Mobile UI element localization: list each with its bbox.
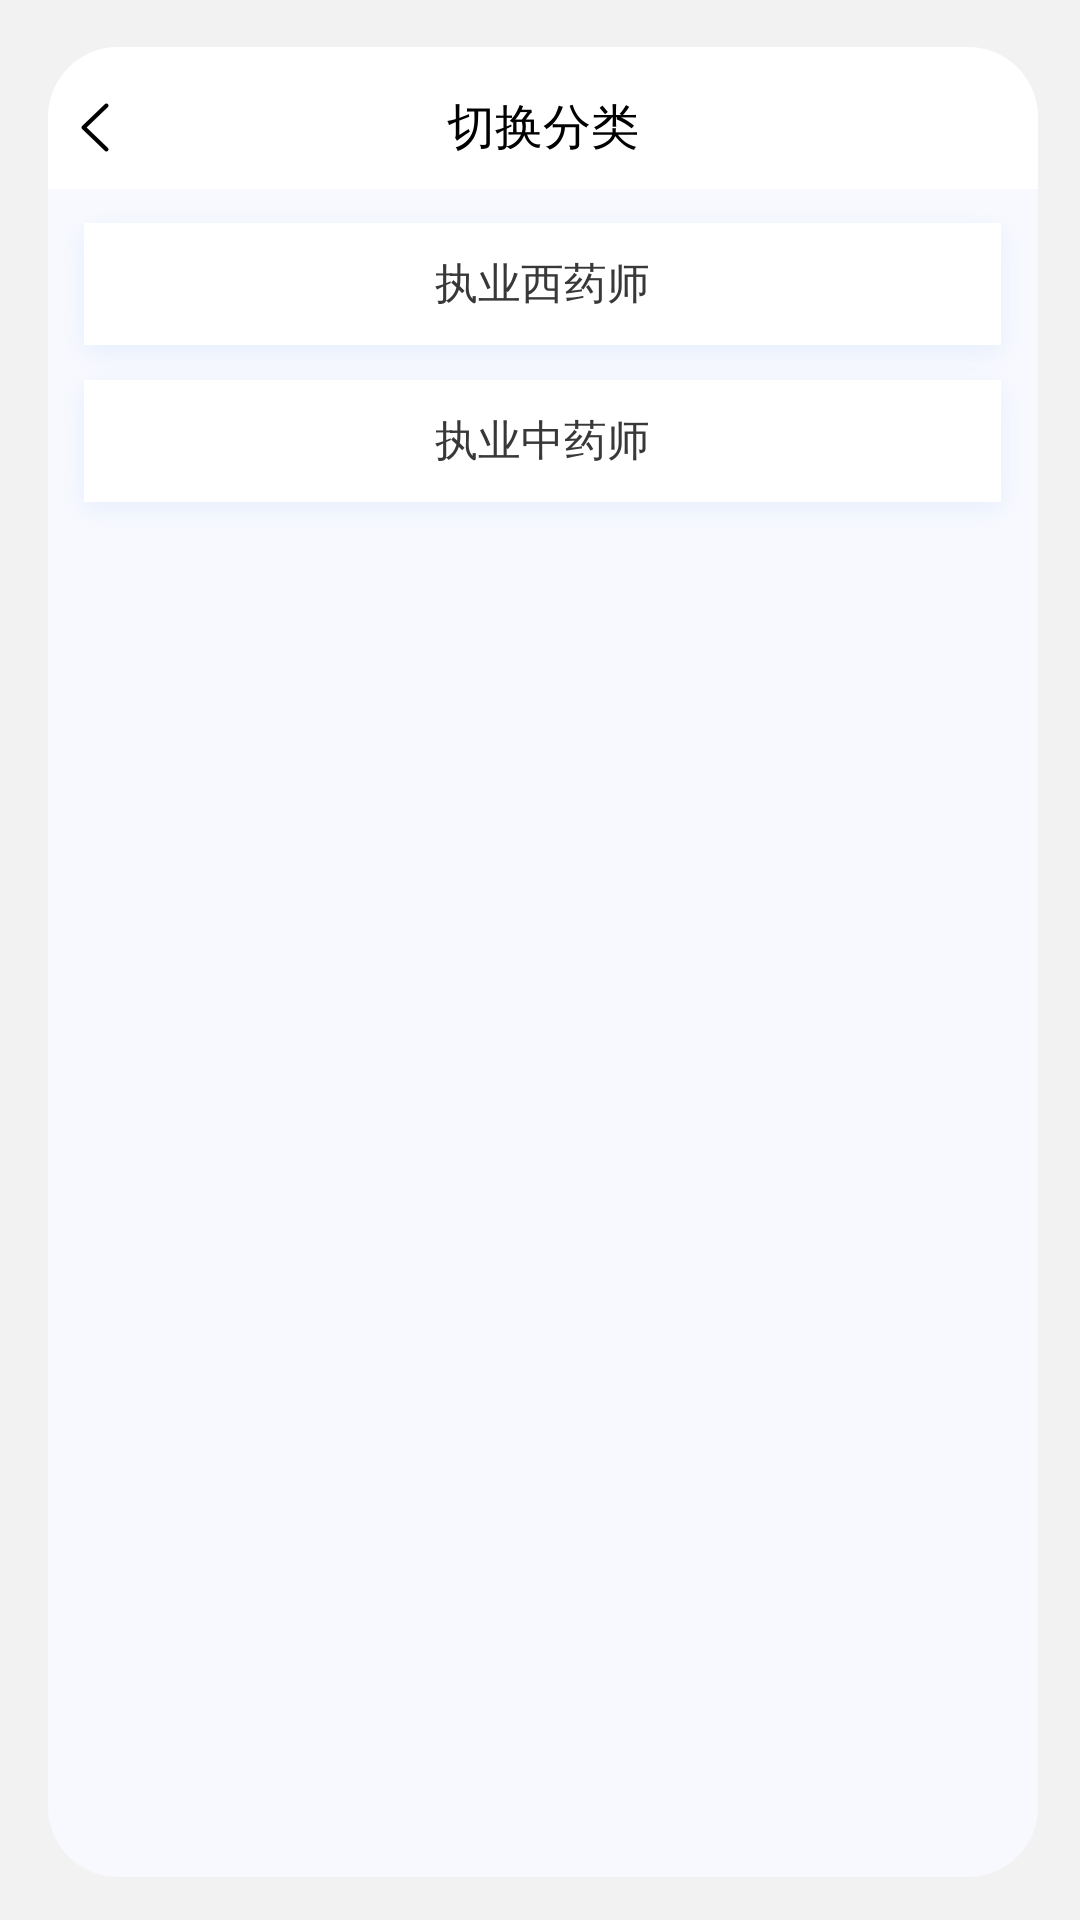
staticText: 执业西药师 [435,258,650,310]
button[interactable]: 执业西药师 [84,223,1001,345]
staticText: 切换分类 [447,98,639,157]
button[interactable]: 执业中药师 [84,380,1001,502]
staticText: 执业中药师 [435,415,650,467]
button[interactable]: Back [48,66,142,189]
